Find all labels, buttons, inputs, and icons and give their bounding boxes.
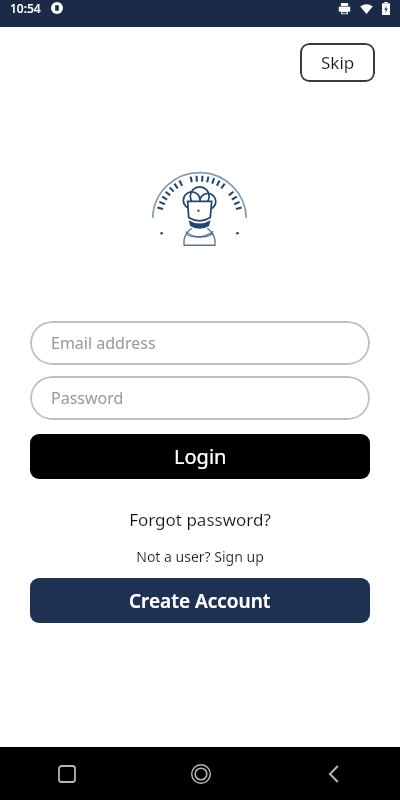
button[interactable]: Back [267, 747, 400, 800]
button[interactable]: Recent apps [0, 747, 134, 800]
staticText: 10:54 [10, 0, 41, 16]
button[interactable]: Create Account [30, 578, 370, 623]
staticText: Forgot password? [129, 508, 271, 531]
staticText: Password [51, 387, 124, 409]
button[interactable]: Forgot password? [30, 508, 370, 531]
staticText: Skip [321, 51, 355, 74]
button[interactable]: Not a user? Sign up [30, 547, 370, 566]
staticText: Create Account [129, 588, 271, 614]
staticText: Email address [51, 332, 156, 354]
staticText: Login [174, 443, 227, 470]
button[interactable]: Skip [300, 43, 375, 82]
button[interactable]: Password [30, 376, 370, 420]
staticText: Not a user? Sign up [136, 547, 264, 566]
button[interactable]: Email address [30, 321, 370, 365]
button[interactable]: Login [30, 434, 370, 479]
button[interactable]: Home [134, 747, 267, 800]
